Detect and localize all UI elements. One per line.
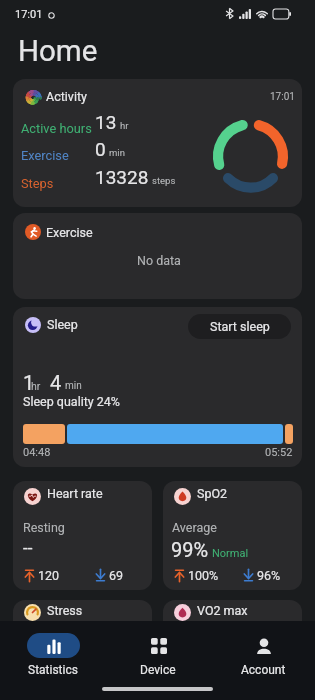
- staticText: hr: [120, 120, 129, 131]
- staticText: No data: [137, 253, 181, 268]
- button[interactable]: [124, 628, 192, 678]
- button[interactable]: [163, 600, 302, 660]
- button[interactable]: Start sleep: [188, 314, 291, 339]
- button[interactable]: [13, 600, 152, 660]
- staticText: Exercise: [21, 148, 69, 163]
- staticText: SpO2: [197, 486, 228, 501]
- staticText: Device: [140, 663, 176, 677]
- staticText: 100%: [188, 568, 219, 583]
- button[interactable]: [13, 307, 302, 467]
- staticText: VO2 max: [197, 603, 248, 618]
- staticText: Activity: [46, 89, 87, 104]
- staticText: 13328: [95, 166, 149, 188]
- staticText: 0: [95, 138, 106, 160]
- staticText: 4: [50, 371, 62, 394]
- staticText: Normal: [212, 547, 249, 560]
- staticText: 1: [23, 371, 35, 394]
- button[interactable]: [163, 481, 302, 590]
- button[interactable]: [13, 79, 302, 207]
- staticText: Average: [172, 520, 217, 535]
- button[interactable]: [13, 481, 152, 590]
- staticText: Resting: [23, 520, 65, 535]
- staticText: --: [23, 538, 33, 558]
- staticText: 04:48: [23, 446, 51, 459]
- staticText: Sleep: [47, 317, 78, 332]
- staticText: Active hours: [21, 121, 92, 136]
- button[interactable]: [229, 628, 297, 678]
- staticText: min: [65, 380, 82, 392]
- button[interactable]: [19, 628, 87, 678]
- staticText: 05:52: [265, 446, 293, 459]
- staticText: 96%: [257, 568, 281, 583]
- staticText: Heart rate: [47, 486, 103, 501]
- staticText: hr: [31, 380, 41, 392]
- staticText: Sleep quality 24%: [23, 394, 121, 409]
- staticText: 17:01: [270, 91, 295, 103]
- staticText: 120: [38, 568, 60, 583]
- staticText: Home: [18, 34, 98, 69]
- staticText: Statistics: [28, 663, 78, 677]
- staticText: min: [109, 147, 125, 158]
- staticText: 13: [95, 111, 117, 133]
- staticText: Steps: [21, 176, 54, 191]
- staticText: 17:01: [15, 8, 43, 21]
- staticText: 99%: [171, 538, 209, 561]
- staticText: steps: [152, 175, 176, 186]
- staticText: Start sleep: [210, 319, 270, 334]
- button[interactable]: [13, 213, 302, 299]
- staticText: 69: [109, 568, 124, 583]
- staticText: Exercise: [46, 225, 93, 240]
- staticText: Stress: [47, 603, 83, 618]
- staticText: Account: [241, 663, 286, 677]
